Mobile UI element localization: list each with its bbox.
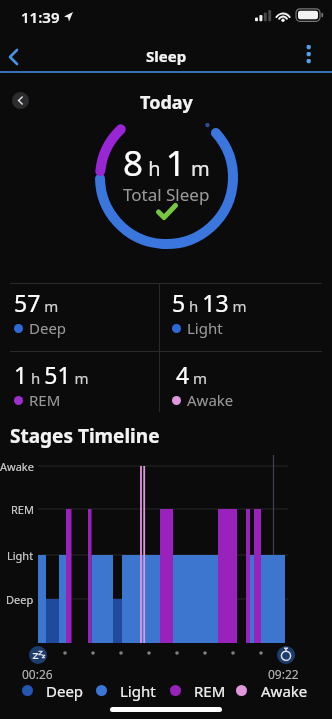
staticText: Deep xyxy=(46,681,84,701)
staticText: Awake xyxy=(187,390,234,410)
staticText: Awake xyxy=(0,459,34,474)
button[interactable] xyxy=(12,92,29,109)
staticText: 5 h 13 m xyxy=(172,287,247,318)
staticText: Light xyxy=(7,548,34,563)
staticText: Light xyxy=(120,681,156,701)
staticText: 00:26 xyxy=(22,666,53,682)
staticText: Light xyxy=(187,318,223,338)
staticText: Stages Timeline xyxy=(10,423,160,449)
staticText: REM xyxy=(11,502,34,517)
staticText: Today xyxy=(140,90,193,115)
staticText: Sleep xyxy=(146,46,187,66)
staticText: 09:22 xyxy=(268,666,299,682)
staticText: Awake xyxy=(261,681,308,701)
staticText: Deep xyxy=(6,592,34,607)
staticText: REM xyxy=(29,390,61,410)
staticText: 11:39 xyxy=(21,7,60,27)
button[interactable] xyxy=(296,40,322,72)
staticText: REM xyxy=(194,681,226,701)
staticText: Deep xyxy=(29,318,67,338)
staticText: 1 h 51 m xyxy=(14,359,89,390)
button[interactable] xyxy=(0,42,32,72)
staticText: 4 m xyxy=(176,359,208,390)
staticText: Total Sleep xyxy=(123,183,210,206)
staticText: 8 h 1 m xyxy=(123,139,210,187)
staticText: 57 m xyxy=(14,287,59,318)
